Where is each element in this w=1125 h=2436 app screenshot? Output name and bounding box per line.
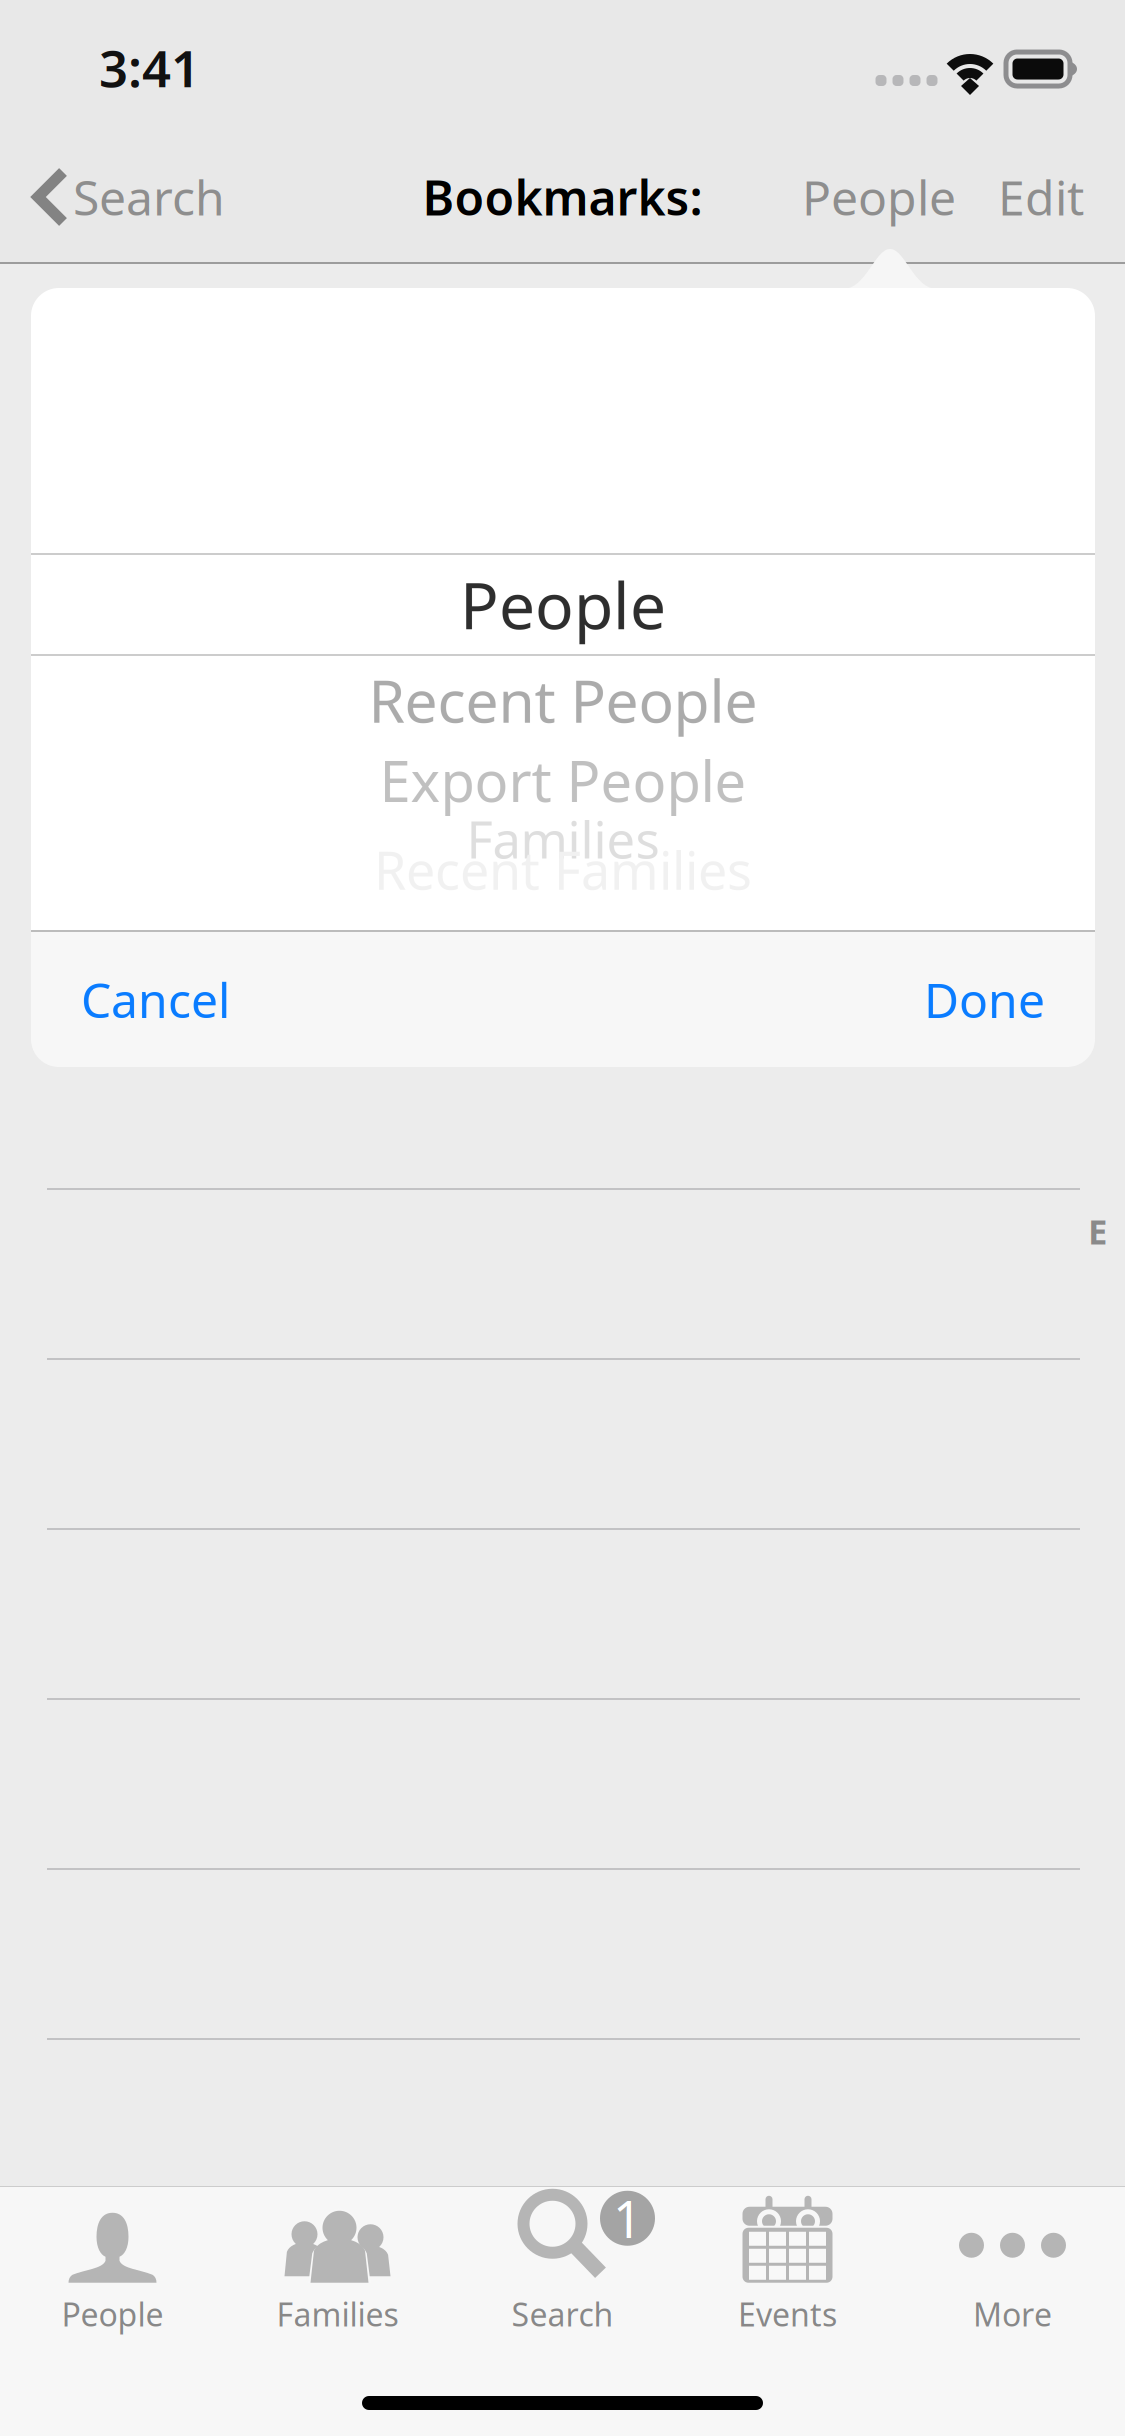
staticText: Done — [924, 968, 1045, 1031]
staticText: Families — [466, 805, 659, 872]
staticText: 1 — [613, 2185, 642, 2252]
staticText: Search — [511, 2293, 613, 2335]
staticText: Recent Families — [374, 835, 752, 904]
button[interactable]: Done — [890, 932, 1095, 1067]
staticText: People — [460, 562, 666, 647]
staticText: Bookmarks: — [422, 165, 702, 229]
staticText: Cancel — [81, 968, 230, 1031]
staticText: Export People — [379, 743, 746, 817]
staticText: Events — [738, 2293, 837, 2335]
button[interactable]: Search — [450, 2190, 675, 2332]
staticText: Recent People — [368, 661, 757, 739]
button[interactable]: Edit — [976, 132, 1110, 262]
button[interactable]: People — [782, 132, 976, 262]
button[interactable]: People — [0, 2190, 225, 2332]
button[interactable]: More — [900, 2190, 1125, 2332]
staticText: 3:41 — [99, 34, 200, 101]
staticText: People — [802, 165, 956, 229]
staticText: More — [973, 2293, 1052, 2335]
button[interactable]: Cancel — [31, 932, 264, 1067]
button[interactable]: Families — [225, 2190, 450, 2332]
staticText: E — [1088, 1208, 1107, 1254]
staticText: Edit — [998, 165, 1084, 229]
button[interactable]: Search — [22, 132, 243, 262]
staticText: Search — [73, 165, 225, 229]
button[interactable]: Events — [675, 2190, 900, 2332]
staticText: People — [61, 2293, 163, 2335]
staticText: Families — [276, 2293, 398, 2335]
